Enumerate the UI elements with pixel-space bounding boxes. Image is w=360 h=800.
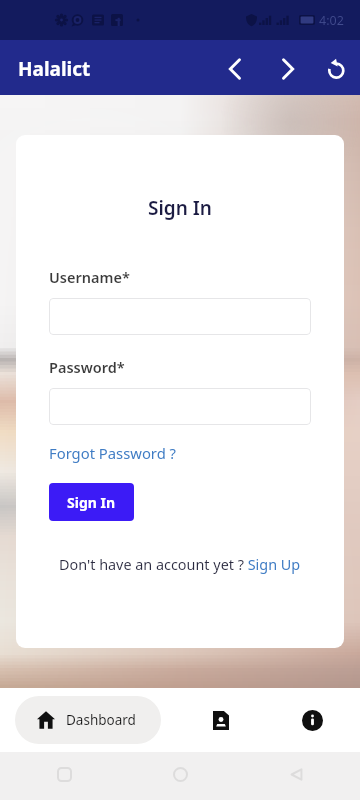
- staticText: Forgot Password ?: [49, 443, 177, 463]
- button[interactable]: Recents: [42, 752, 86, 796]
- staticText: Dashboard: [66, 711, 136, 729]
- staticText: 4:02: [319, 12, 344, 29]
- button[interactable]: [49, 298, 311, 335]
- button[interactable]: Forgot Password ?: [49, 443, 177, 463]
- button[interactable]: Back: [274, 752, 318, 796]
- button[interactable]: Contacts: [197, 696, 245, 744]
- button[interactable]: [49, 388, 311, 425]
- button[interactable]: Dashboard: [15, 696, 161, 744]
- button[interactable]: Sign In: [49, 483, 134, 521]
- button[interactable]: Forward: [268, 49, 308, 89]
- staticText: Username*: [49, 267, 130, 287]
- button[interactable]: Don't have an account yet ? Sign Up: [49, 555, 311, 575]
- staticText: Sign In: [67, 493, 116, 512]
- staticText: Halalict: [18, 56, 91, 82]
- staticText: Password*: [49, 357, 125, 377]
- button[interactable]: Refresh: [316, 49, 356, 89]
- button[interactable]: Back: [215, 49, 255, 89]
- button[interactable]: Info: [288, 696, 336, 744]
- staticText: Sign In: [16, 195, 344, 221]
- button[interactable]: Home: [158, 752, 202, 796]
- staticText: Don't have an account yet ? Sign Up: [59, 555, 301, 575]
